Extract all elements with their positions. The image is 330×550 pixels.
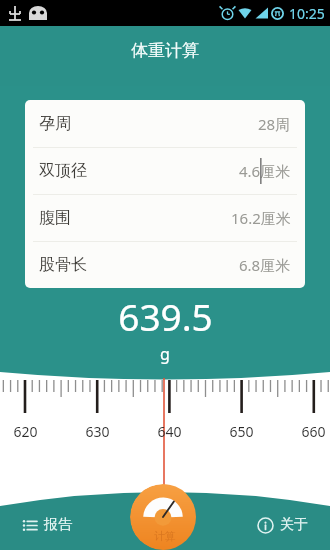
staticText: 640: [157, 422, 182, 441]
staticText: 体重计算: [131, 40, 199, 61]
button[interactable]: 计算: [130, 484, 200, 550]
button[interactable]: 报告: [22, 508, 72, 542]
staticText: 4.6厘米: [239, 161, 291, 181]
button[interactable]: 关于: [258, 508, 308, 542]
staticText: 腹围: [39, 208, 71, 228]
staticText: 28周: [258, 114, 291, 134]
staticText: 10:25: [289, 4, 325, 23]
staticText: 报告: [44, 516, 72, 534]
staticText: 计算: [154, 529, 176, 543]
button[interactable]: 双顶径: [25, 147, 305, 194]
staticText: 股骨长: [39, 255, 87, 275]
button[interactable]: 腹围: [25, 194, 305, 241]
staticText: 关于: [280, 516, 308, 534]
staticText: 620: [13, 422, 38, 441]
staticText: 630: [85, 422, 110, 441]
staticText: g: [160, 343, 170, 365]
staticText: 孕周: [39, 114, 71, 134]
staticText: 639.5: [118, 291, 213, 341]
staticText: 660: [301, 422, 326, 441]
staticText: 650: [229, 422, 254, 441]
staticText: 16.2厘米: [231, 208, 291, 228]
button[interactable]: 股骨长: [25, 241, 305, 288]
staticText: 双顶径: [39, 161, 87, 181]
staticText: 6.8厘米: [239, 255, 291, 275]
button[interactable]: 孕周: [25, 100, 305, 147]
